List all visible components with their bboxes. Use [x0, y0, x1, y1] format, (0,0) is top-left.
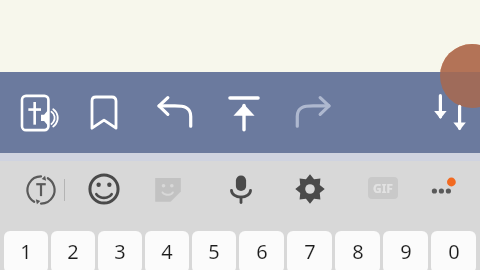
button[interactable]: Redo [286, 85, 342, 141]
staticText: 3 [114, 238, 126, 265]
staticText: 4 [161, 238, 173, 265]
button[interactable]: Stickers [146, 167, 190, 211]
button[interactable]: 0 [431, 231, 476, 270]
staticText: 9 [400, 238, 412, 265]
button[interactable]: 6 [239, 231, 284, 270]
staticText: 7 [304, 238, 316, 265]
button[interactable]: Send up [216, 85, 272, 141]
button[interactable]: Voice input [218, 166, 264, 212]
button[interactable]: Bookmark [78, 87, 130, 139]
button[interactable]: Undo [146, 85, 202, 141]
button[interactable]: Floating action [440, 44, 480, 108]
button[interactable]: 4 [145, 231, 189, 270]
button[interactable]: Settings [288, 167, 332, 211]
button[interactable]: Scroll to bottom [420, 83, 480, 143]
button[interactable]: 1 [4, 231, 48, 270]
button[interactable]: More options [424, 171, 464, 211]
staticText: 2 [67, 238, 79, 265]
button[interactable]: 8 [335, 231, 380, 270]
button[interactable]: Translate [18, 167, 64, 213]
button[interactable]: 7 [287, 231, 332, 270]
button[interactable]: 2 [51, 231, 95, 270]
staticText: 5 [208, 238, 220, 265]
staticText: 8 [352, 238, 364, 265]
button[interactable]: 5 [192, 231, 236, 270]
button[interactable]: Emoji [82, 167, 126, 211]
staticText: 1 [20, 238, 32, 265]
staticText: 0 [448, 238, 460, 265]
button[interactable]: 3 [98, 231, 142, 270]
staticText: 6 [256, 238, 268, 265]
button[interactable]: GIF [368, 177, 398, 199]
staticText: GIF [373, 180, 393, 196]
button[interactable]: Audio Bible [16, 85, 72, 141]
button[interactable]: 9 [383, 231, 428, 270]
